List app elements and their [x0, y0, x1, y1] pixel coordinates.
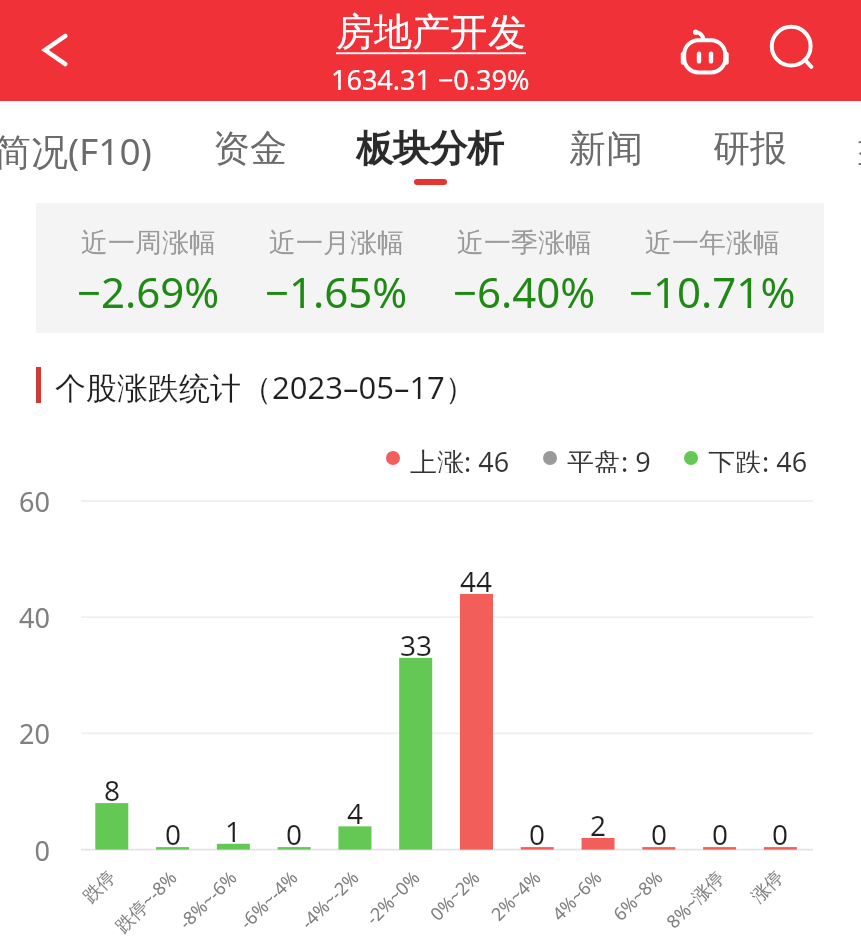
staticText: −1.65% — [265, 263, 408, 320]
staticText: 近一年涨幅 — [645, 226, 780, 260]
staticText: 1 — [225, 812, 242, 850]
staticText: 平盘: 9 — [567, 443, 651, 473]
button[interactable]: AI assistant — [670, 21, 740, 81]
staticText: 研报 — [713, 125, 787, 172]
staticText: 个股涨跌统计（2023–05–17） — [55, 366, 476, 408]
staticText: 44 — [460, 562, 493, 600]
staticText: 4%~6% — [546, 865, 607, 926]
staticText: -2%~0% — [360, 865, 425, 931]
staticText: 0 — [529, 815, 546, 853]
button[interactable]: Back — [22, 15, 92, 85]
button[interactable]: 盘口 — [794, 101, 861, 198]
staticText: 0 — [712, 815, 729, 853]
staticText: 1634.31 −0.39% — [331, 61, 530, 98]
staticText: −6.40% — [453, 263, 596, 320]
staticText: 近一季涨幅 — [457, 226, 592, 260]
staticText: 近一周涨幅 — [81, 226, 216, 260]
staticText: 新闻 — [569, 125, 643, 172]
staticText: 涨停 — [747, 866, 788, 908]
staticText: 板块分析 — [356, 125, 504, 172]
staticText: 8 — [104, 771, 121, 809]
staticText: 跌停 — [79, 866, 120, 908]
staticText: 近一月涨幅 — [269, 226, 404, 260]
staticText: −10.71% — [629, 263, 796, 320]
staticText: 0 — [286, 815, 303, 853]
staticText: 跌停~-8% — [109, 865, 182, 938]
button[interactable]: 板块分析 — [330, 101, 530, 198]
button[interactable]: 资金 — [150, 101, 350, 198]
staticText: 下跌: 46 — [708, 443, 808, 473]
staticText: 0 — [0, 832, 50, 869]
staticText: 4 — [347, 794, 364, 832]
staticText: 8%~涨停 — [661, 865, 729, 934]
staticText: 盘口 — [857, 125, 861, 172]
staticText: 上涨: 46 — [410, 443, 510, 473]
button[interactable]: 研报 — [650, 101, 850, 198]
button[interactable]: Search — [760, 20, 830, 80]
staticText: 资金 — [213, 125, 287, 172]
staticText: -6%~-4% — [234, 865, 303, 935]
button[interactable]: 简况(F10) — [0, 101, 173, 198]
staticText: 简况(F10) — [0, 125, 152, 176]
staticText: 0 — [772, 815, 789, 853]
staticText: 60 — [0, 483, 50, 520]
staticText: -4%~-2% — [295, 865, 364, 935]
staticText: 6%~8% — [607, 865, 668, 926]
staticText: 0%~2% — [424, 865, 485, 926]
staticText: 2%~4% — [485, 865, 546, 926]
staticText: 33 — [400, 626, 433, 664]
staticText: -8%~-6% — [173, 865, 242, 935]
staticText: 40 — [0, 599, 50, 636]
button[interactable]: 下跌: 46 — [684, 443, 808, 473]
button[interactable]: 上涨: 46 — [386, 443, 510, 473]
staticText: 0 — [165, 815, 182, 853]
button[interactable]: 新闻 — [506, 101, 706, 198]
staticText: 0 — [651, 815, 668, 853]
staticText: −2.69% — [77, 263, 220, 320]
staticText: 房地产开发 — [336, 8, 526, 56]
button[interactable]: 平盘: 9 — [543, 443, 651, 473]
staticText: 20 — [0, 715, 50, 752]
staticText: 2 — [590, 806, 607, 844]
